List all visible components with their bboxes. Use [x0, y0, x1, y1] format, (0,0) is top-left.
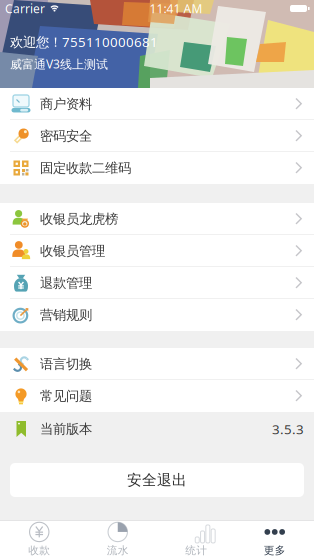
staticText: 统计: [185, 544, 207, 557]
staticText: 流水: [107, 544, 129, 557]
staticText: 欢迎您！755110000681: [10, 33, 158, 51]
staticText: 收银员管理: [40, 243, 105, 259]
button[interactable]: 语言切换: [0, 348, 314, 380]
button[interactable]: 固定收款二维码: [0, 152, 314, 184]
button[interactable]: 当前版本: [0, 413, 314, 445]
button[interactable]: 密码安全: [0, 120, 314, 152]
staticText: 3.5.3: [272, 420, 304, 438]
staticText: 营销规则: [40, 307, 92, 323]
staticText: 退款管理: [40, 275, 92, 291]
staticText: 当前版本: [40, 421, 92, 437]
button[interactable]: 收款: [0, 520, 78, 558]
button[interactable]: 商户资料: [0, 88, 314, 120]
staticText: Carrier: [5, 0, 45, 16]
button[interactable]: 常见问题: [0, 380, 314, 412]
staticText: 常见问题: [40, 388, 92, 404]
staticText: 商户资料: [40, 96, 92, 112]
staticText: 安全退出: [127, 471, 187, 489]
button[interactable]: 流水: [78, 520, 157, 558]
button[interactable]: 收银员龙虎榜: [0, 203, 314, 235]
staticText: 11:41 AM: [149, 0, 202, 16]
staticText: 收银员龙虎榜: [40, 211, 118, 227]
staticText: 固定收款二维码: [40, 160, 131, 176]
staticText: 威富通V3线上测试: [10, 56, 108, 72]
staticText: 密码安全: [40, 128, 92, 144]
button[interactable]: 收银员管理: [0, 235, 314, 267]
staticText: 收款: [28, 544, 50, 557]
button[interactable]: 退款管理: [0, 267, 314, 299]
button[interactable]: 更多: [235, 520, 314, 558]
button[interactable]: 营销规则: [0, 299, 314, 331]
staticText: 语言切换: [40, 356, 92, 372]
button[interactable]: 安全退出: [10, 463, 304, 497]
button[interactable]: 统计: [157, 520, 235, 558]
staticText: 更多: [264, 544, 286, 557]
